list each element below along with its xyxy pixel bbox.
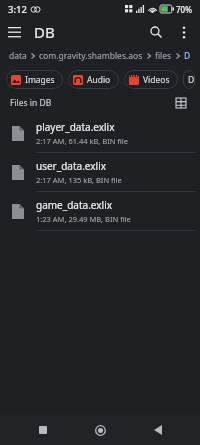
button[interactable]: Grid view [170, 92, 192, 114]
staticText: user_data.exlix [36, 159, 107, 173]
button[interactable]: Images [6, 70, 63, 89]
staticText: DB [184, 50, 191, 62]
staticText: com.gravity.shambles.aos [39, 50, 143, 62]
staticText: data [9, 50, 27, 62]
button[interactable]: Videos [124, 70, 178, 89]
staticText: 2:17 AM, 135 kB, BIN file [36, 175, 122, 185]
staticText: files [155, 50, 172, 62]
staticText: 2:17 AM, 61.44 kB, BIN file [36, 136, 129, 146]
staticText: player_data.exlix [36, 120, 115, 134]
button[interactable]: Back [143, 415, 173, 445]
button[interactable]: Menu [0, 18, 28, 46]
staticText: 3:12 [8, 3, 27, 16]
button[interactable]: game_data.exlix [0, 192, 200, 230]
button[interactable]: data [9, 50, 27, 62]
button[interactable]: Home [85, 415, 115, 445]
button[interactable]: com.gravity.shambles.aos [39, 50, 143, 62]
button[interactable]: More options [170, 18, 198, 46]
button[interactable]: user_data.exlix [0, 153, 200, 191]
staticText: game_data.exlix [36, 198, 113, 212]
button[interactable]: DB [184, 50, 191, 62]
staticText: Audio [87, 74, 111, 86]
staticText: Images [25, 74, 55, 86]
staticText: DB [34, 22, 55, 42]
staticText: Videos [143, 74, 170, 86]
button[interactable]: Search [142, 18, 170, 46]
staticText: 70% [176, 4, 192, 15]
button[interactable]: files [155, 50, 172, 62]
staticText: 1:23 AM, 29.49 MB, BIN file [36, 214, 131, 224]
button[interactable]: Audio [68, 70, 119, 89]
staticText: Files in DB [10, 97, 52, 109]
button[interactable]: Recent apps [28, 415, 58, 445]
button[interactable]: Doc [183, 70, 195, 89]
button[interactable]: player_data.exlix [0, 114, 200, 152]
